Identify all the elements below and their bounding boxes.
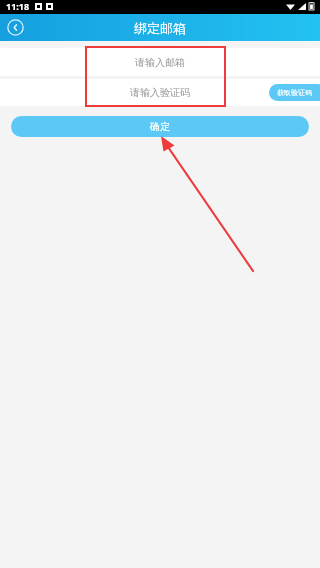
staticText: 绑定邮箱 — [134, 20, 186, 36]
staticText: 11:18 — [6, 0, 30, 12]
staticText: 请输入邮箱 — [135, 56, 185, 69]
staticText: 请输入验证码 — [130, 86, 190, 99]
button[interactable]: 确定 — [11, 116, 309, 137]
button[interactable]: 请输入邮箱 — [0, 48, 320, 76]
staticText: 确定 — [150, 120, 170, 133]
staticText: 获取验证码 — [277, 88, 312, 97]
button[interactable]: 请输入验证码 — [0, 79, 320, 106]
button[interactable]: Back — [6, 18, 25, 37]
button[interactable]: 获取验证码 — [269, 84, 320, 101]
